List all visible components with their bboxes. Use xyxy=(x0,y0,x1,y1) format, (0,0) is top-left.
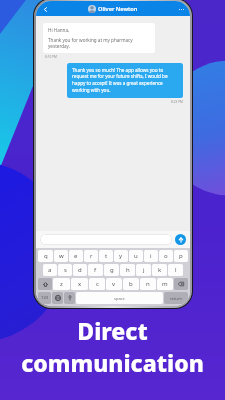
button[interactable]: q xyxy=(38,250,53,262)
staticText: o xyxy=(164,252,168,260)
staticText: b xyxy=(129,280,133,288)
staticText: y xyxy=(119,252,123,260)
staticText: x xyxy=(78,280,82,288)
staticText: 8:10 PM xyxy=(45,55,57,59)
staticText: p xyxy=(179,252,183,260)
button[interactable]: c xyxy=(89,278,105,290)
button[interactable]: return xyxy=(164,292,188,304)
button[interactable]: Back xyxy=(40,4,50,14)
button[interactable]: u xyxy=(129,250,143,262)
button[interactable]: y xyxy=(114,250,128,262)
staticText: n xyxy=(146,280,150,288)
button[interactable]: d xyxy=(73,264,87,276)
staticText: f xyxy=(94,266,97,274)
staticText: q xyxy=(44,252,48,260)
staticText: m xyxy=(162,280,168,288)
staticText: v xyxy=(112,280,116,288)
staticText: return xyxy=(170,296,182,301)
staticText: l xyxy=(175,266,177,274)
staticText: h xyxy=(126,266,130,274)
staticText: j xyxy=(143,266,145,274)
button[interactable]: r xyxy=(84,250,98,262)
staticText: Oliver Newton xyxy=(98,5,138,13)
staticText: c xyxy=(96,280,99,288)
button[interactable]: b xyxy=(123,278,139,290)
staticText: g xyxy=(110,266,114,274)
button[interactable]: f xyxy=(88,264,103,276)
staticText: space xyxy=(114,296,125,301)
staticText: 8:23 PM xyxy=(171,100,183,104)
button[interactable]: k xyxy=(152,264,167,276)
staticText: s xyxy=(64,266,67,274)
staticText: w xyxy=(59,252,64,260)
button[interactable]: Hi Hanna, xyxy=(43,23,155,53)
button[interactable]: z xyxy=(53,278,70,290)
button[interactable]: 123 xyxy=(38,292,51,304)
button[interactable]: Send xyxy=(175,234,186,245)
staticText: a xyxy=(48,266,52,274)
button[interactable]: v xyxy=(106,278,122,290)
button[interactable] xyxy=(40,234,172,245)
button[interactable]: w xyxy=(54,250,68,262)
button[interactable]: o xyxy=(159,250,173,262)
staticText: i xyxy=(150,252,152,260)
staticText: r xyxy=(90,252,93,260)
button[interactable]: g xyxy=(104,264,119,276)
button[interactable]: Backspace xyxy=(174,278,188,290)
button[interactable]: Oliver Newton xyxy=(88,5,138,13)
staticText: z xyxy=(60,280,63,288)
button[interactable]: x xyxy=(71,278,88,290)
button[interactable]: Dictation xyxy=(64,292,75,304)
button[interactable]: Thank you so much! The app allows you to… xyxy=(67,63,183,98)
staticText: Hi Hanna, xyxy=(48,27,70,33)
staticText: d xyxy=(78,266,82,274)
button[interactable]: n xyxy=(140,278,156,290)
staticText: Direct xyxy=(77,315,148,346)
staticText: u xyxy=(134,252,138,260)
button[interactable]: m xyxy=(157,278,173,290)
button[interactable]: j xyxy=(136,264,151,276)
staticText: e xyxy=(74,252,78,260)
button[interactable]: t xyxy=(99,250,113,262)
button[interactable]: l xyxy=(168,264,183,276)
staticText: t xyxy=(105,252,108,260)
staticText: Thank you so much! The app allows you to… xyxy=(72,67,178,94)
button[interactable]: More options xyxy=(176,4,186,14)
button[interactable]: Emoji xyxy=(52,292,63,304)
button[interactable]: a xyxy=(43,264,57,276)
button[interactable]: p xyxy=(174,250,188,262)
button[interactable]: e xyxy=(69,250,83,262)
staticText: 123 xyxy=(41,295,49,301)
button[interactable]: i xyxy=(144,250,158,262)
staticText: Thank you for working at my pharmacy yes… xyxy=(48,37,133,49)
button[interactable]: Shift xyxy=(38,278,52,290)
button[interactable]: s xyxy=(58,264,72,276)
button[interactable]: h xyxy=(120,264,135,276)
button[interactable]: space xyxy=(76,292,163,304)
staticText: k xyxy=(158,266,162,274)
staticText: communication xyxy=(21,347,204,378)
